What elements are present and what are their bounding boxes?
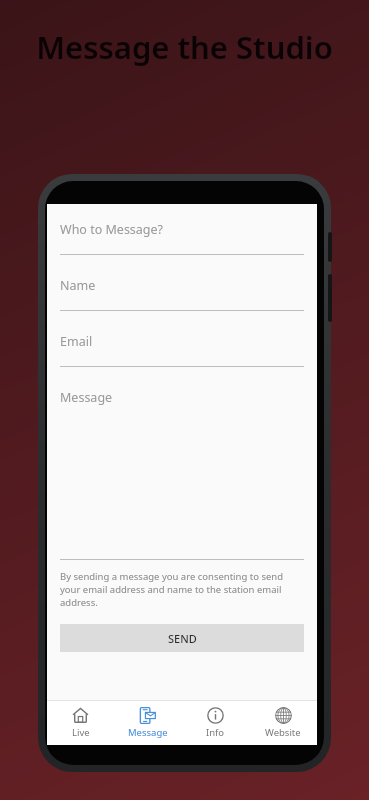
button[interactable]: Message: [114, 701, 181, 745]
staticText: Website: [265, 726, 301, 739]
button[interactable]: Live: [47, 701, 114, 745]
staticText: SEND: [168, 631, 197, 646]
button[interactable]: SEND: [60, 624, 304, 652]
button[interactable]: Who to Message?: [60, 218, 304, 255]
button[interactable]: Name: [60, 274, 304, 311]
button[interactable]: Info: [181, 701, 249, 745]
staticText: Name: [60, 277, 96, 294]
button[interactable]: Website: [249, 701, 317, 745]
button[interactable]: Email: [60, 330, 304, 367]
staticText: Live: [72, 726, 90, 739]
staticText: Message the Studio: [30, 26, 339, 68]
staticText: Message: [128, 726, 168, 739]
staticText: Info: [206, 726, 225, 739]
staticText: Who to Message?: [60, 221, 164, 238]
staticText: By sending a message you are consenting …: [60, 570, 304, 609]
button[interactable]: Message: [60, 386, 304, 560]
staticText: Message: [60, 389, 113, 406]
staticText: Email: [60, 333, 93, 350]
